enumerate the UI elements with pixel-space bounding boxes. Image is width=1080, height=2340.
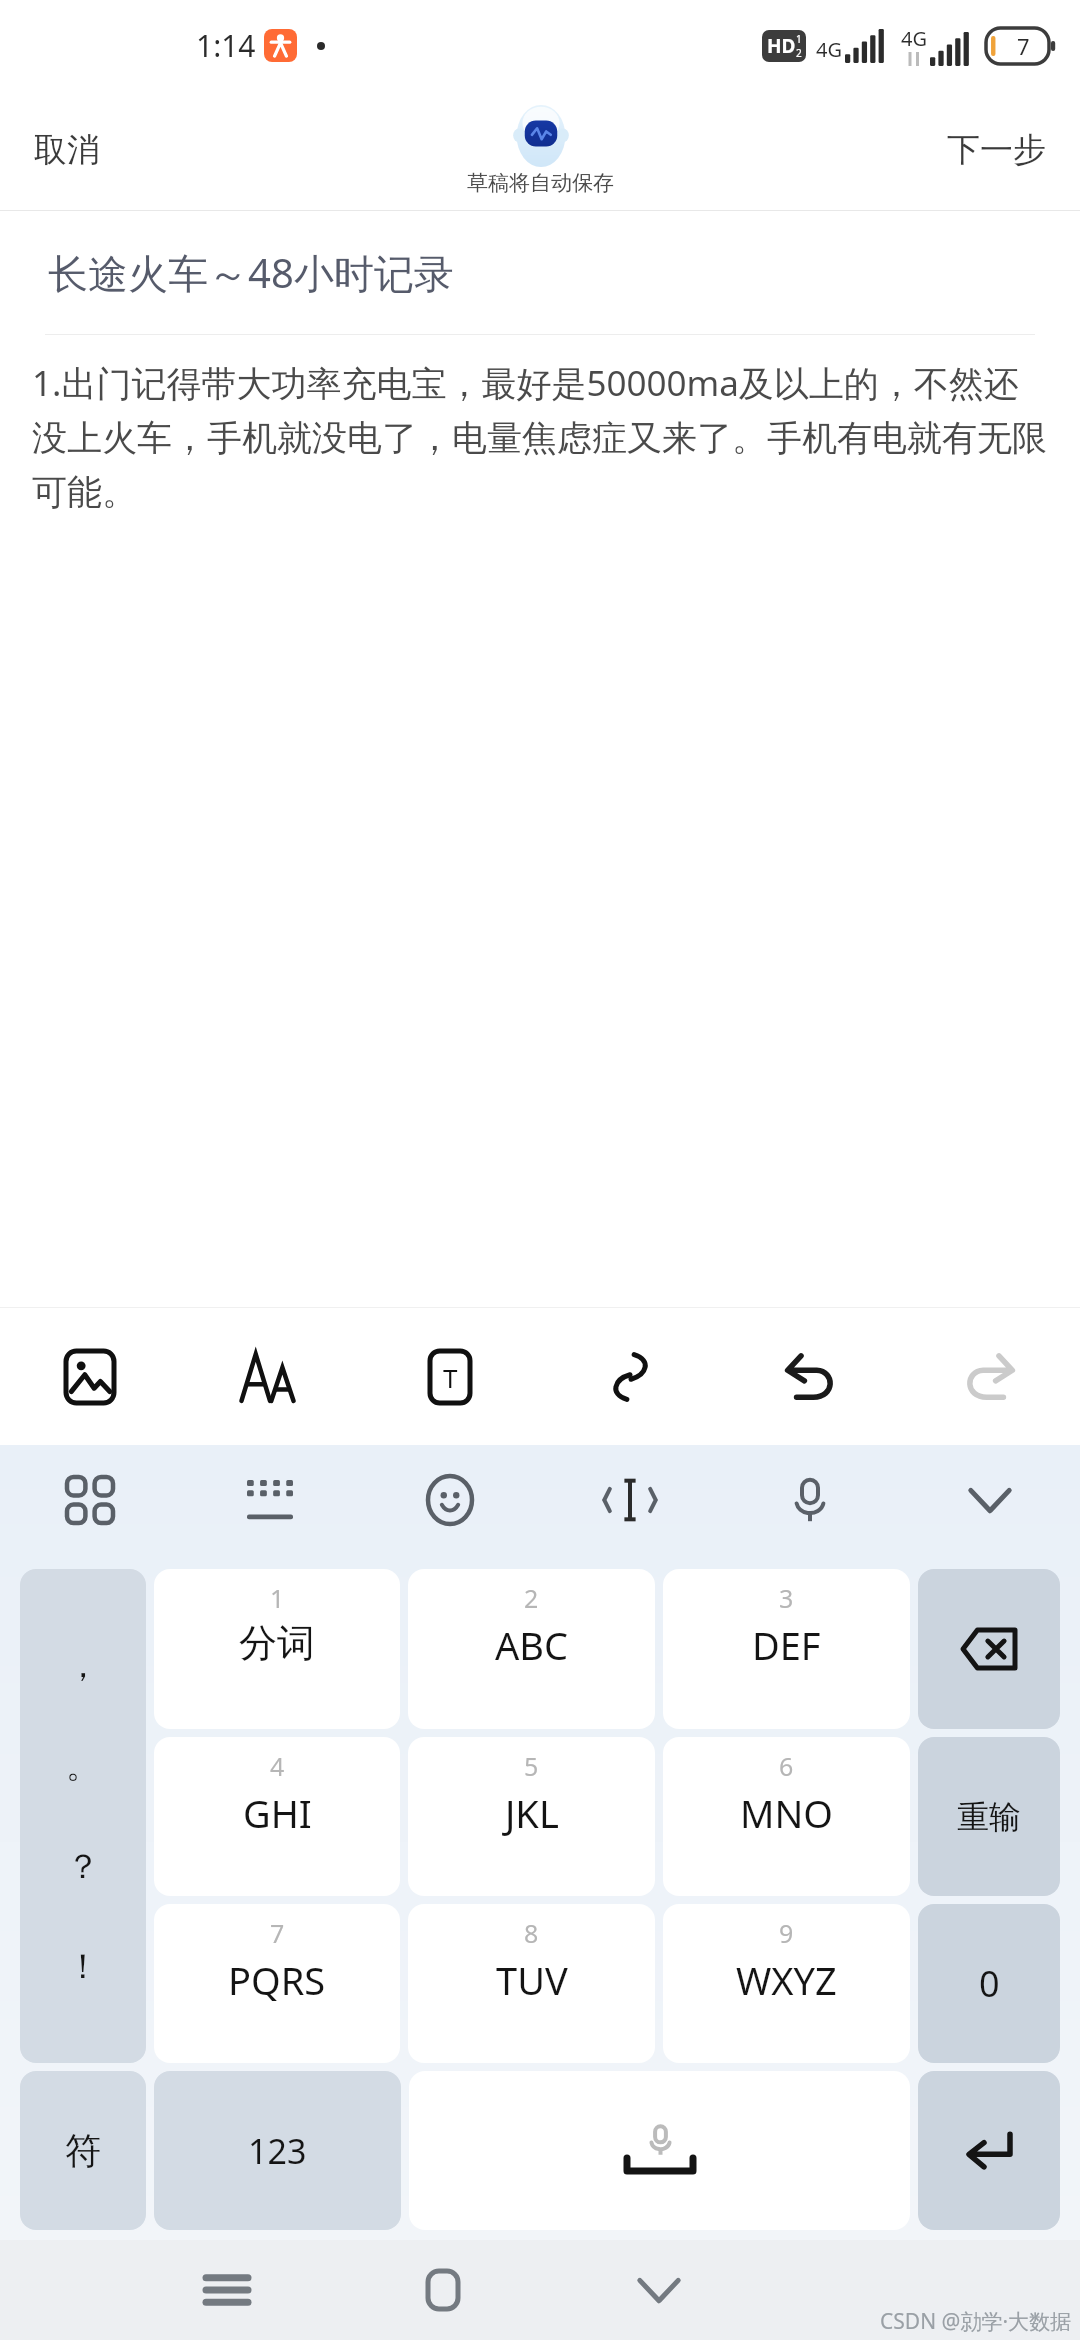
button[interactable]: 9 xyxy=(663,1904,910,2063)
button[interactable]: 8 xyxy=(408,1904,655,2063)
button[interactable]: 123 xyxy=(154,2071,401,2230)
staticText: 5 xyxy=(524,1749,539,1783)
button[interactable]: Keyboard layout xyxy=(180,1445,360,1555)
staticText: 长途火车～48小时记录 xyxy=(48,245,454,300)
staticText: 4G xyxy=(816,36,842,63)
staticText: 1.出门记得带大功率充电宝，最好是50000ma及以上的，不然还没上火车，手机就… xyxy=(32,359,1048,515)
staticText: 3 xyxy=(779,1581,794,1615)
button[interactable]: Font size xyxy=(180,1308,360,1445)
button[interactable]: 重输 xyxy=(918,1737,1060,1896)
button[interactable]: 1 xyxy=(154,1569,400,1729)
staticText: MNO xyxy=(740,1787,834,1839)
button[interactable]: 草稿将自动保存 xyxy=(467,105,614,196)
staticText: 重输 xyxy=(957,1797,1021,1837)
staticText: 6 xyxy=(779,1749,794,1783)
staticText: CSDN @勍学·大数据 xyxy=(880,2307,1072,2336)
staticText: TUV xyxy=(496,1954,568,2006)
button[interactable]: ， xyxy=(20,1569,146,2063)
staticText: 2 xyxy=(524,1581,539,1615)
button[interactable]: 6 xyxy=(663,1737,910,1896)
staticText: WXYZ xyxy=(736,1954,837,2006)
staticText: ， xyxy=(66,1644,100,1687)
staticText: 1 xyxy=(270,1581,285,1615)
staticText: 符 xyxy=(65,2128,101,2173)
button[interactable]: 4 xyxy=(154,1737,400,1896)
button[interactable]: Hide keyboard xyxy=(900,1445,1080,1555)
button[interactable]: 7 xyxy=(154,1904,400,2063)
button[interactable]: Text style xyxy=(360,1308,540,1445)
button[interactable]: 2 xyxy=(408,1569,655,1729)
button[interactable]: Keyboard modes xyxy=(0,1445,180,1555)
staticText: PQRS xyxy=(228,1954,326,2006)
button[interactable]: Backspace xyxy=(918,1569,1060,1729)
button[interactable]: Emoji xyxy=(360,1445,540,1555)
staticText: 草稿将自动保存 xyxy=(467,170,614,196)
staticText: 123 xyxy=(248,2128,307,2174)
button[interactable]: Enter xyxy=(918,2071,1060,2230)
button[interactable]: 长途火车～48小时记录 xyxy=(0,233,1080,312)
staticText: GHI xyxy=(243,1787,312,1839)
staticText: 0 xyxy=(979,1959,1000,2008)
staticText: 8 xyxy=(524,1916,539,1950)
staticText: 9 xyxy=(779,1916,794,1950)
button[interactable]: 符 xyxy=(20,2071,146,2230)
button[interactable]: 取消 xyxy=(10,115,124,185)
staticText: ABC xyxy=(495,1619,568,1671)
staticText: 4 xyxy=(270,1749,285,1783)
staticText: ！ xyxy=(66,1945,100,1988)
button[interactable]: Voice input xyxy=(720,1445,900,1555)
staticText: 。 xyxy=(66,1744,100,1787)
staticText: 7 xyxy=(1017,31,1030,61)
button[interactable]: Move cursor xyxy=(540,1445,720,1555)
button[interactable]: 1.出门记得带大功率充电宝，最好是50000ma及以上的，不然还没上火车，手机就… xyxy=(0,359,1080,515)
button[interactable]: Insert link xyxy=(540,1308,720,1445)
staticText: DEF xyxy=(752,1619,821,1671)
button[interactable]: 0 xyxy=(918,1904,1060,2063)
staticText: T xyxy=(443,1360,458,1395)
button[interactable]: 5 xyxy=(408,1737,655,1896)
button[interactable]: Insert image xyxy=(0,1308,180,1445)
staticText: HD xyxy=(767,33,796,59)
button[interactable]: Undo xyxy=(720,1308,900,1445)
staticText: JKL xyxy=(505,1787,559,1839)
staticText: 7 xyxy=(270,1916,285,1950)
button[interactable]: Redo xyxy=(900,1308,1080,1445)
button[interactable]: 下一步 xyxy=(923,115,1070,185)
staticText: 1 xyxy=(796,32,802,46)
staticText: ？ xyxy=(66,1845,100,1888)
button[interactable]: Home xyxy=(335,2240,551,2340)
button[interactable]: Recents xyxy=(119,2240,335,2340)
staticText: 2 xyxy=(796,46,802,60)
staticText: 分词 xyxy=(239,1619,315,1667)
button[interactable]: Space xyxy=(409,2071,910,2230)
staticText: 取消 xyxy=(34,129,100,171)
staticText: 4G xyxy=(901,25,927,52)
button[interactable]: 3 xyxy=(663,1569,910,1729)
staticText: 下一步 xyxy=(947,129,1046,171)
button[interactable]: Hide keyboard xyxy=(551,2240,767,2340)
staticText: 1:14 xyxy=(196,25,256,66)
